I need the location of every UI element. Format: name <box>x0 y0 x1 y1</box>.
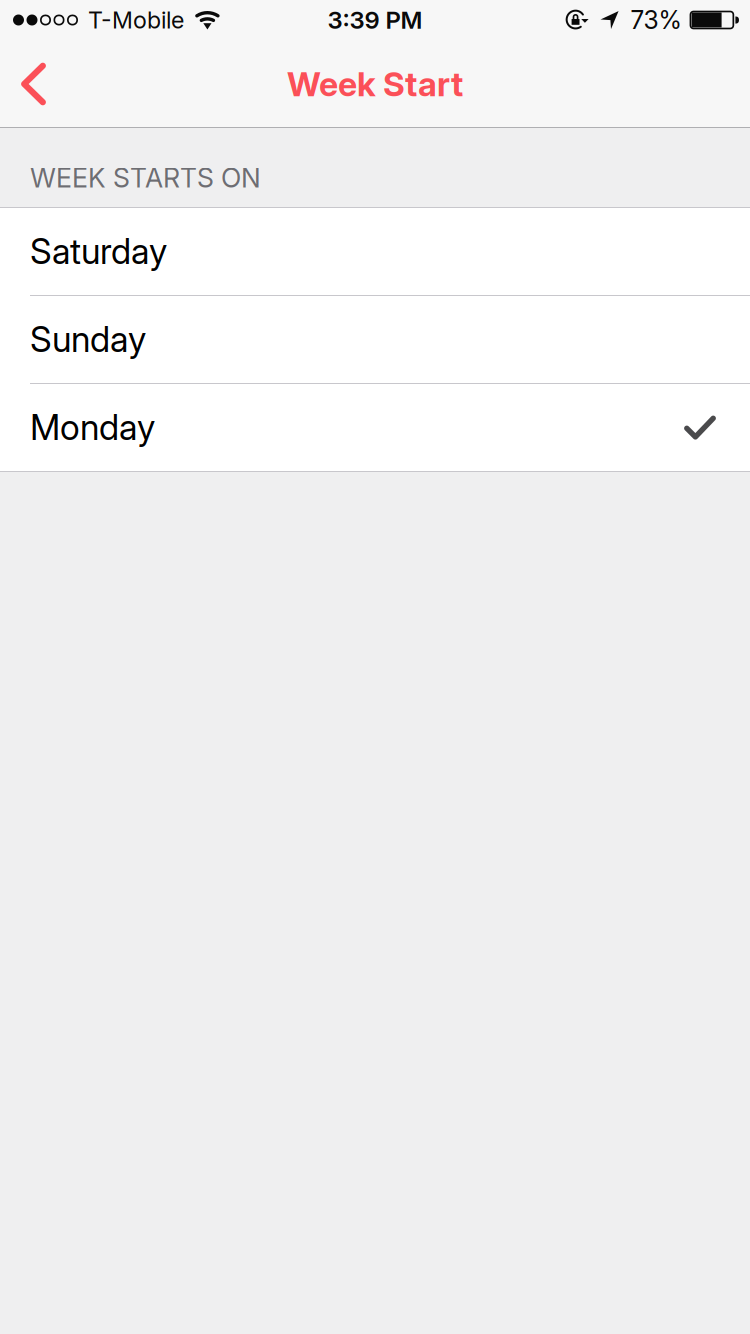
staticText: Week Start <box>287 64 463 104</box>
staticText: Monday <box>30 406 155 448</box>
button[interactable]: Back <box>0 40 92 128</box>
button[interactable]: Sunday <box>0 296 750 384</box>
staticText: 3:39 PM <box>327 5 422 34</box>
button[interactable]: Saturday <box>0 208 750 296</box>
staticText: WEEK STARTS ON <box>30 162 261 194</box>
staticText: Sunday <box>30 318 146 360</box>
staticText: 73% <box>631 5 682 35</box>
staticText: T-Mobile <box>88 6 184 34</box>
staticText: Saturday <box>30 230 167 272</box>
button[interactable]: Monday <box>0 384 750 472</box>
